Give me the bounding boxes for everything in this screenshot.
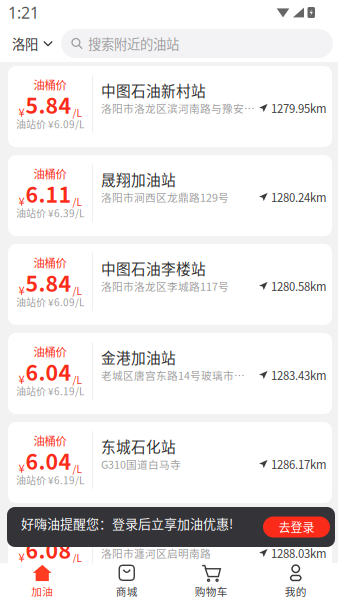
staticText: 中图石油新村站 bbox=[101, 79, 206, 101]
button[interactable]: 我的 bbox=[253, 563, 338, 600]
staticText: 1288.03km bbox=[271, 545, 326, 561]
staticText: 洛阳市洛龙区滨河南路与豫安街… bbox=[101, 100, 255, 116]
button[interactable]: 油桶价 bbox=[8, 244, 332, 325]
staticText: 油站价 ¥6.09/L bbox=[16, 295, 84, 309]
staticText: /L bbox=[72, 105, 81, 120]
staticText: 油站价 ¥6.19/L bbox=[16, 473, 84, 487]
staticText: 去登录 bbox=[278, 518, 314, 536]
staticText: /L bbox=[72, 283, 81, 298]
button[interactable]: 油桶价 bbox=[8, 66, 332, 147]
button[interactable]: 油桶价 bbox=[8, 422, 332, 503]
staticText: 老城区唐宫东路14号玻璃市场院内 bbox=[101, 367, 255, 383]
staticText: 5.84 bbox=[25, 89, 71, 120]
button[interactable]: 油桶价 bbox=[8, 155, 332, 236]
staticText: ¥ bbox=[18, 103, 24, 120]
staticText: 洛化宏兴中能加油站 bbox=[101, 524, 236, 546]
staticText: 1279.95km bbox=[271, 100, 326, 116]
staticText: 搜索附近的油站 bbox=[88, 34, 179, 53]
staticText: /L bbox=[72, 461, 81, 476]
staticText: ¥ bbox=[18, 370, 24, 387]
staticText: 油站价 ¥6.39/L bbox=[16, 206, 84, 220]
staticText: 好嗨油提醒您：登录后立享加油优惠! bbox=[21, 513, 233, 532]
staticText: /L bbox=[72, 372, 81, 387]
staticText: G310国道白马寺 bbox=[101, 456, 181, 472]
staticText: /L bbox=[72, 194, 81, 209]
staticText: ¥ bbox=[18, 281, 24, 298]
staticText: 6.04 bbox=[25, 356, 71, 387]
staticText: 1286.17km bbox=[271, 456, 326, 472]
staticText: 我的 bbox=[285, 583, 307, 599]
staticText: 东城石化站 bbox=[101, 435, 176, 457]
staticText: 1280.24km bbox=[271, 189, 326, 205]
staticText: 6.08 bbox=[25, 534, 71, 565]
staticText: 油站价 ¥6.19/L bbox=[16, 384, 84, 398]
staticText: 加油 bbox=[31, 583, 53, 599]
staticText: 油桶价 bbox=[33, 165, 66, 182]
staticText: 油桶价 bbox=[33, 521, 66, 538]
staticText: 5.84 bbox=[25, 267, 71, 298]
staticText: 金港加油站 bbox=[101, 346, 176, 368]
staticText: ¥ bbox=[18, 548, 24, 565]
button[interactable]: 油桶价 bbox=[8, 333, 332, 414]
staticText: 1:21 bbox=[8, 2, 39, 23]
staticText: 6.04 bbox=[25, 445, 71, 476]
staticText: /L bbox=[72, 550, 81, 565]
button[interactable]: 去登录 bbox=[263, 516, 330, 537]
staticText: 晟翔加油站 bbox=[101, 168, 176, 190]
staticText: 1283.43km bbox=[271, 367, 326, 383]
staticText: 洛阳 bbox=[12, 34, 38, 53]
staticText: 购物车 bbox=[195, 583, 228, 599]
staticText: 洛阳市洛龙区李城路117号 bbox=[101, 278, 229, 294]
staticText: 商城 bbox=[116, 583, 138, 599]
staticText: 油站价 ¥6.09/L bbox=[16, 117, 84, 131]
staticText: 1280.58km bbox=[271, 278, 326, 294]
staticText: 洛阳市瀍河区启明南路 bbox=[101, 545, 211, 561]
button[interactable]: 加油 bbox=[0, 563, 84, 600]
button[interactable]: 商城 bbox=[84, 563, 169, 600]
button[interactable]: 洛阳 bbox=[0, 25, 61, 62]
staticText: 油桶价 bbox=[33, 343, 66, 360]
staticText: 油桶价 bbox=[33, 432, 66, 449]
staticText: 中图石油李楼站 bbox=[101, 257, 206, 279]
staticText: 油站价 ¥6.29/L bbox=[16, 562, 84, 576]
staticText: 洛阳市涧西区龙鼎路129号 bbox=[101, 189, 229, 205]
button[interactable]: 油桶价 bbox=[8, 511, 332, 592]
staticText: 6.11 bbox=[25, 178, 71, 209]
staticText: 油桶价 bbox=[33, 76, 66, 93]
button[interactable]: 购物车 bbox=[169, 563, 253, 600]
button[interactable]: 搜索附近的油站 bbox=[61, 29, 333, 58]
staticText: ¥ bbox=[18, 192, 24, 209]
staticText: 油桶价 bbox=[33, 254, 66, 271]
staticText: ¥ bbox=[18, 459, 24, 476]
